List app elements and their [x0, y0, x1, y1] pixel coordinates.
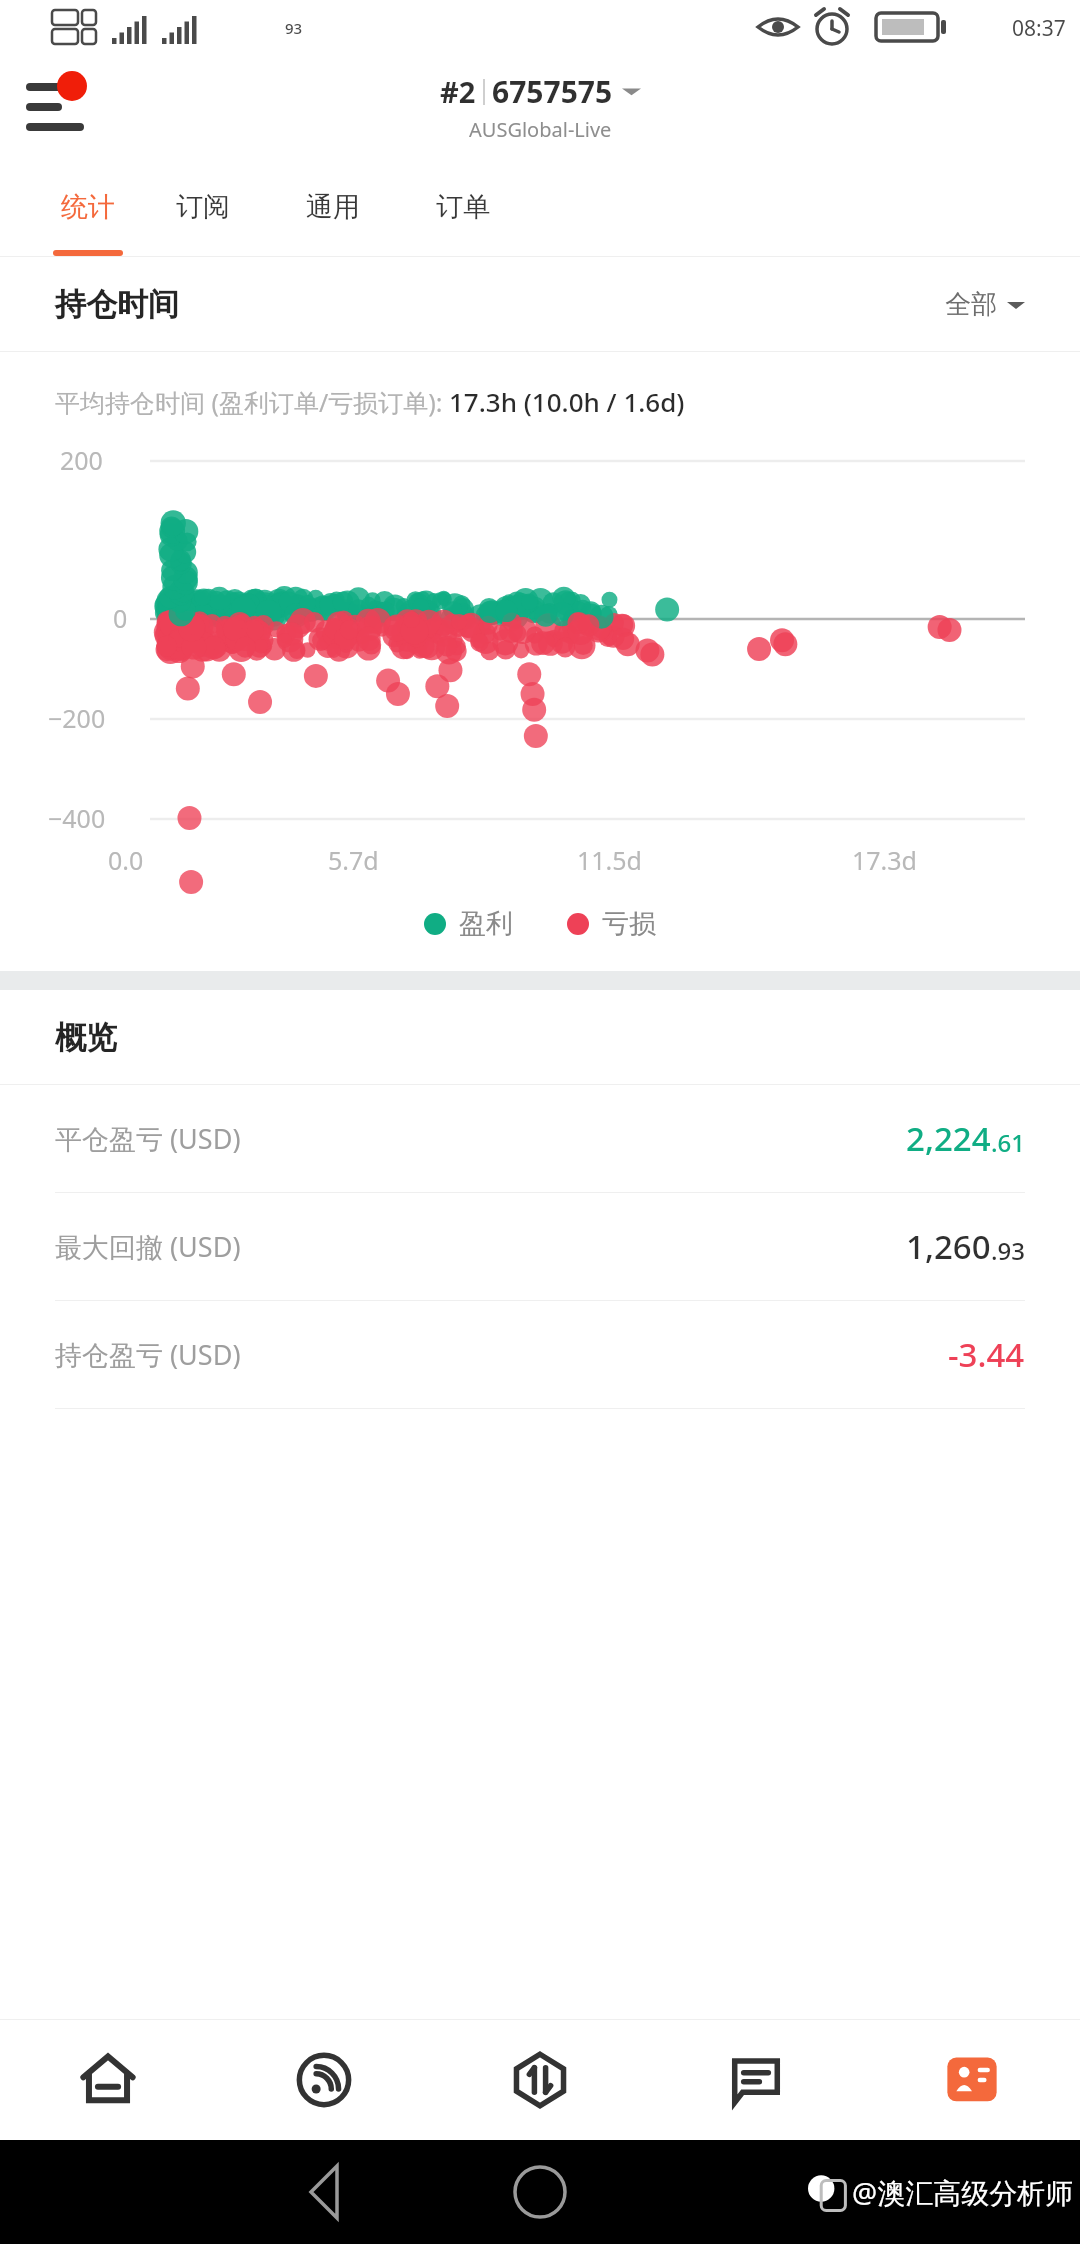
button[interactable]: Profile	[864, 2020, 1080, 2140]
staticText: #2	[440, 72, 476, 111]
staticText: @澳汇高级分析师	[852, 2173, 1074, 2211]
staticText: 最大回撤 (USD)	[55, 1228, 241, 1265]
staticText: 盈利	[459, 907, 513, 941]
staticText: 持仓时间	[55, 285, 179, 324]
staticText: -3.44	[948, 1332, 1025, 1377]
staticText: .93	[991, 1234, 1025, 1267]
button[interactable]: Messages	[648, 2020, 864, 2140]
staticText: 订单	[436, 190, 490, 224]
staticText: .61	[991, 1126, 1025, 1159]
button[interactable]: 全部	[945, 288, 1025, 321]
button[interactable]: 平仓盈亏 (USD)	[0, 1085, 1080, 1192]
staticText: 17.3d	[852, 843, 917, 877]
staticText: 全部	[945, 288, 997, 321]
staticText: 0.0	[108, 843, 144, 877]
staticText: 5.7d	[328, 843, 379, 877]
staticText: −200	[48, 701, 106, 735]
button[interactable]: Signals	[216, 2020, 432, 2140]
button[interactable]: 订阅	[138, 158, 268, 256]
staticText: 通用	[306, 190, 360, 224]
staticText: 持仓盈亏 (USD)	[55, 1336, 241, 1373]
staticText: 0	[113, 601, 128, 635]
staticText: 1,260	[906, 1224, 991, 1269]
button[interactable]: #2	[440, 71, 641, 143]
button[interactable]: 统计	[38, 158, 138, 256]
staticText: 统计	[61, 190, 115, 224]
button[interactable]: 通用	[268, 158, 398, 256]
staticText: 200	[60, 443, 103, 477]
button[interactable]: 最大回撤 (USD)	[0, 1193, 1080, 1300]
staticText: 93	[285, 18, 303, 38]
staticText: −400	[48, 801, 106, 835]
staticText: 订阅	[176, 190, 230, 224]
staticText: 平均持仓时间 (盈利订单/亏损订单): 17.3h (10.0h / 1.6d)	[55, 384, 685, 419]
button[interactable]: 订单	[398, 158, 528, 256]
staticText: 平仓盈亏 (USD)	[55, 1120, 241, 1157]
staticText: 2,224	[906, 1116, 991, 1161]
staticText: 11.5d	[577, 843, 642, 877]
staticText: 亏损	[602, 907, 656, 941]
staticText: AUSGlobal-Live	[469, 116, 612, 143]
button[interactable]: 持仓盈亏 (USD)	[0, 1301, 1080, 1408]
staticText: 08:37	[1012, 14, 1066, 43]
button[interactable]: Trade	[432, 2020, 648, 2140]
staticText: 6757575	[492, 71, 613, 112]
button[interactable]: Menu	[24, 71, 96, 143]
staticText: 概览	[55, 1018, 117, 1057]
button[interactable]: Home	[0, 2020, 216, 2140]
